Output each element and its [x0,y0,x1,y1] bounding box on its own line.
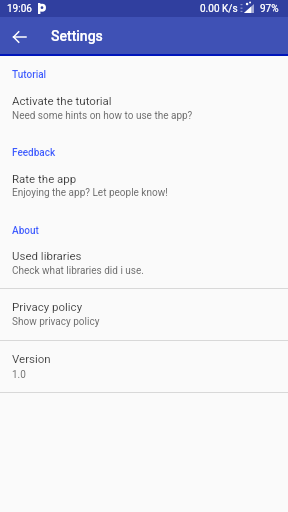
staticText: Privacy policy [12,300,83,313]
staticText: Rate the app [12,172,77,185]
staticText: Check what libraries did i use. [12,265,144,277]
staticText: Tutorial [12,69,47,81]
staticText: About [12,225,39,237]
button[interactable]: Activate the tutorial [0,81,288,132]
staticText: Used libraries [12,249,82,262]
staticText: Settings [51,28,103,44]
staticText: Activate the tutorial [12,94,112,107]
staticText: Need some hints on how to use the app? [12,110,193,122]
button[interactable]: Rate the app [0,159,288,210]
staticText: Enjoying the app? Let people know! [12,187,168,199]
staticText: 97% [260,3,279,15]
staticText: 19:06 [7,3,32,15]
staticText: Version [12,352,51,365]
button[interactable]: Used libraries [0,236,288,287]
button[interactable]: Privacy policy [0,287,288,338]
staticText: Feedback [12,147,56,159]
staticText: 1.0 [12,369,26,381]
button[interactable]: Back [7,24,32,49]
staticText: Show privacy policy [12,316,100,328]
staticText: 0.00 K/s [200,3,238,15]
button[interactable]: Version [0,339,288,390]
